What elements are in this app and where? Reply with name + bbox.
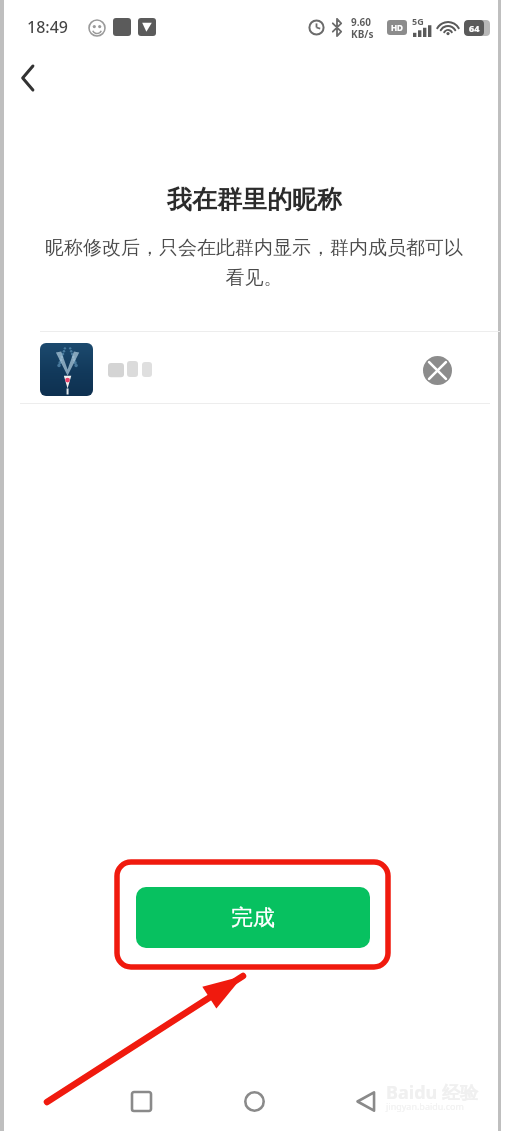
staticText: KB/s (351, 27, 374, 41)
staticText: 5G (412, 15, 424, 27)
button[interactable] (40, 343, 93, 396)
staticText: 18:49 (27, 16, 68, 38)
staticText: jingyan.baidu.com (386, 1100, 464, 1112)
button[interactable]: Recents (128, 1088, 154, 1114)
staticText: 我在群里的昵称 (167, 184, 342, 215)
button[interactable]: Back (6, 56, 50, 100)
button[interactable]: Home (241, 1088, 267, 1114)
staticText: Baidu 经验 (386, 1080, 478, 1105)
staticText: 9.60 (351, 15, 371, 29)
staticText: 完成 (231, 904, 275, 932)
staticText: 昵称修改后，只会在此群内显示，群内成员都可以看见。 (44, 236, 464, 290)
button[interactable]: Back (352, 1088, 378, 1114)
button[interactable]: Clear (423, 356, 452, 385)
staticText: 64 (469, 22, 480, 34)
button[interactable]: 完成 (136, 887, 370, 948)
staticText: HD (391, 22, 403, 33)
